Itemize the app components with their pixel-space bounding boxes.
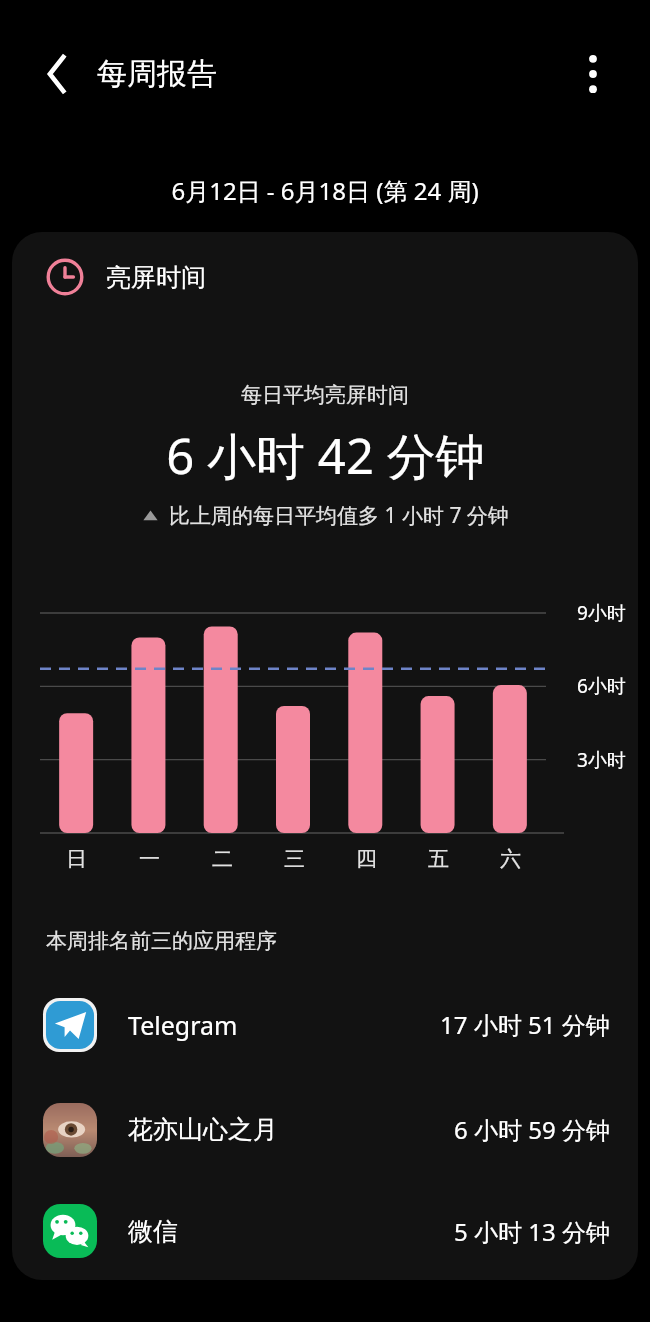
staticText: 3小时	[577, 747, 626, 773]
staticText: 亮屏时间	[106, 262, 206, 293]
staticText: 一	[139, 846, 160, 872]
button[interactable]: 微信	[12, 1182, 638, 1280]
button[interactable]: More options	[562, 43, 624, 105]
button[interactable]: Telegram	[12, 972, 638, 1077]
button[interactable]: Back	[24, 41, 90, 107]
staticText: 五	[428, 846, 449, 872]
staticText: 六	[500, 846, 521, 872]
staticText: 三	[284, 846, 305, 872]
button[interactable]: 亮屏时间	[12, 232, 638, 322]
staticText: 微信	[128, 1216, 178, 1247]
staticText: 6小时	[577, 673, 626, 699]
staticText: 花亦山心之月	[128, 1114, 278, 1145]
staticText: 17 小时 51 分钟	[440, 1008, 610, 1041]
staticText: 每日平均亮屏时间	[241, 382, 409, 408]
staticText: 本周排名前三的应用程序	[46, 928, 277, 954]
staticText: Telegram	[128, 1008, 238, 1042]
button[interactable]: 花亦山心之月	[12, 1077, 638, 1182]
staticText: 每周报告	[97, 55, 217, 93]
staticText: 6 小时 42 分钟	[166, 422, 485, 489]
staticText: 5 小时 13 分钟	[454, 1215, 610, 1248]
staticText: 比上周的每日平均值多 1 小时 7 分钟	[169, 501, 509, 530]
staticText: 6月12日 - 6月18日 (第 24 周)	[171, 174, 479, 207]
staticText: 9小时	[577, 600, 626, 626]
staticText: 二	[212, 846, 233, 872]
staticText: 日	[66, 846, 87, 872]
staticText: 四	[356, 846, 377, 872]
staticText: 6 小时 59 分钟	[454, 1113, 610, 1146]
